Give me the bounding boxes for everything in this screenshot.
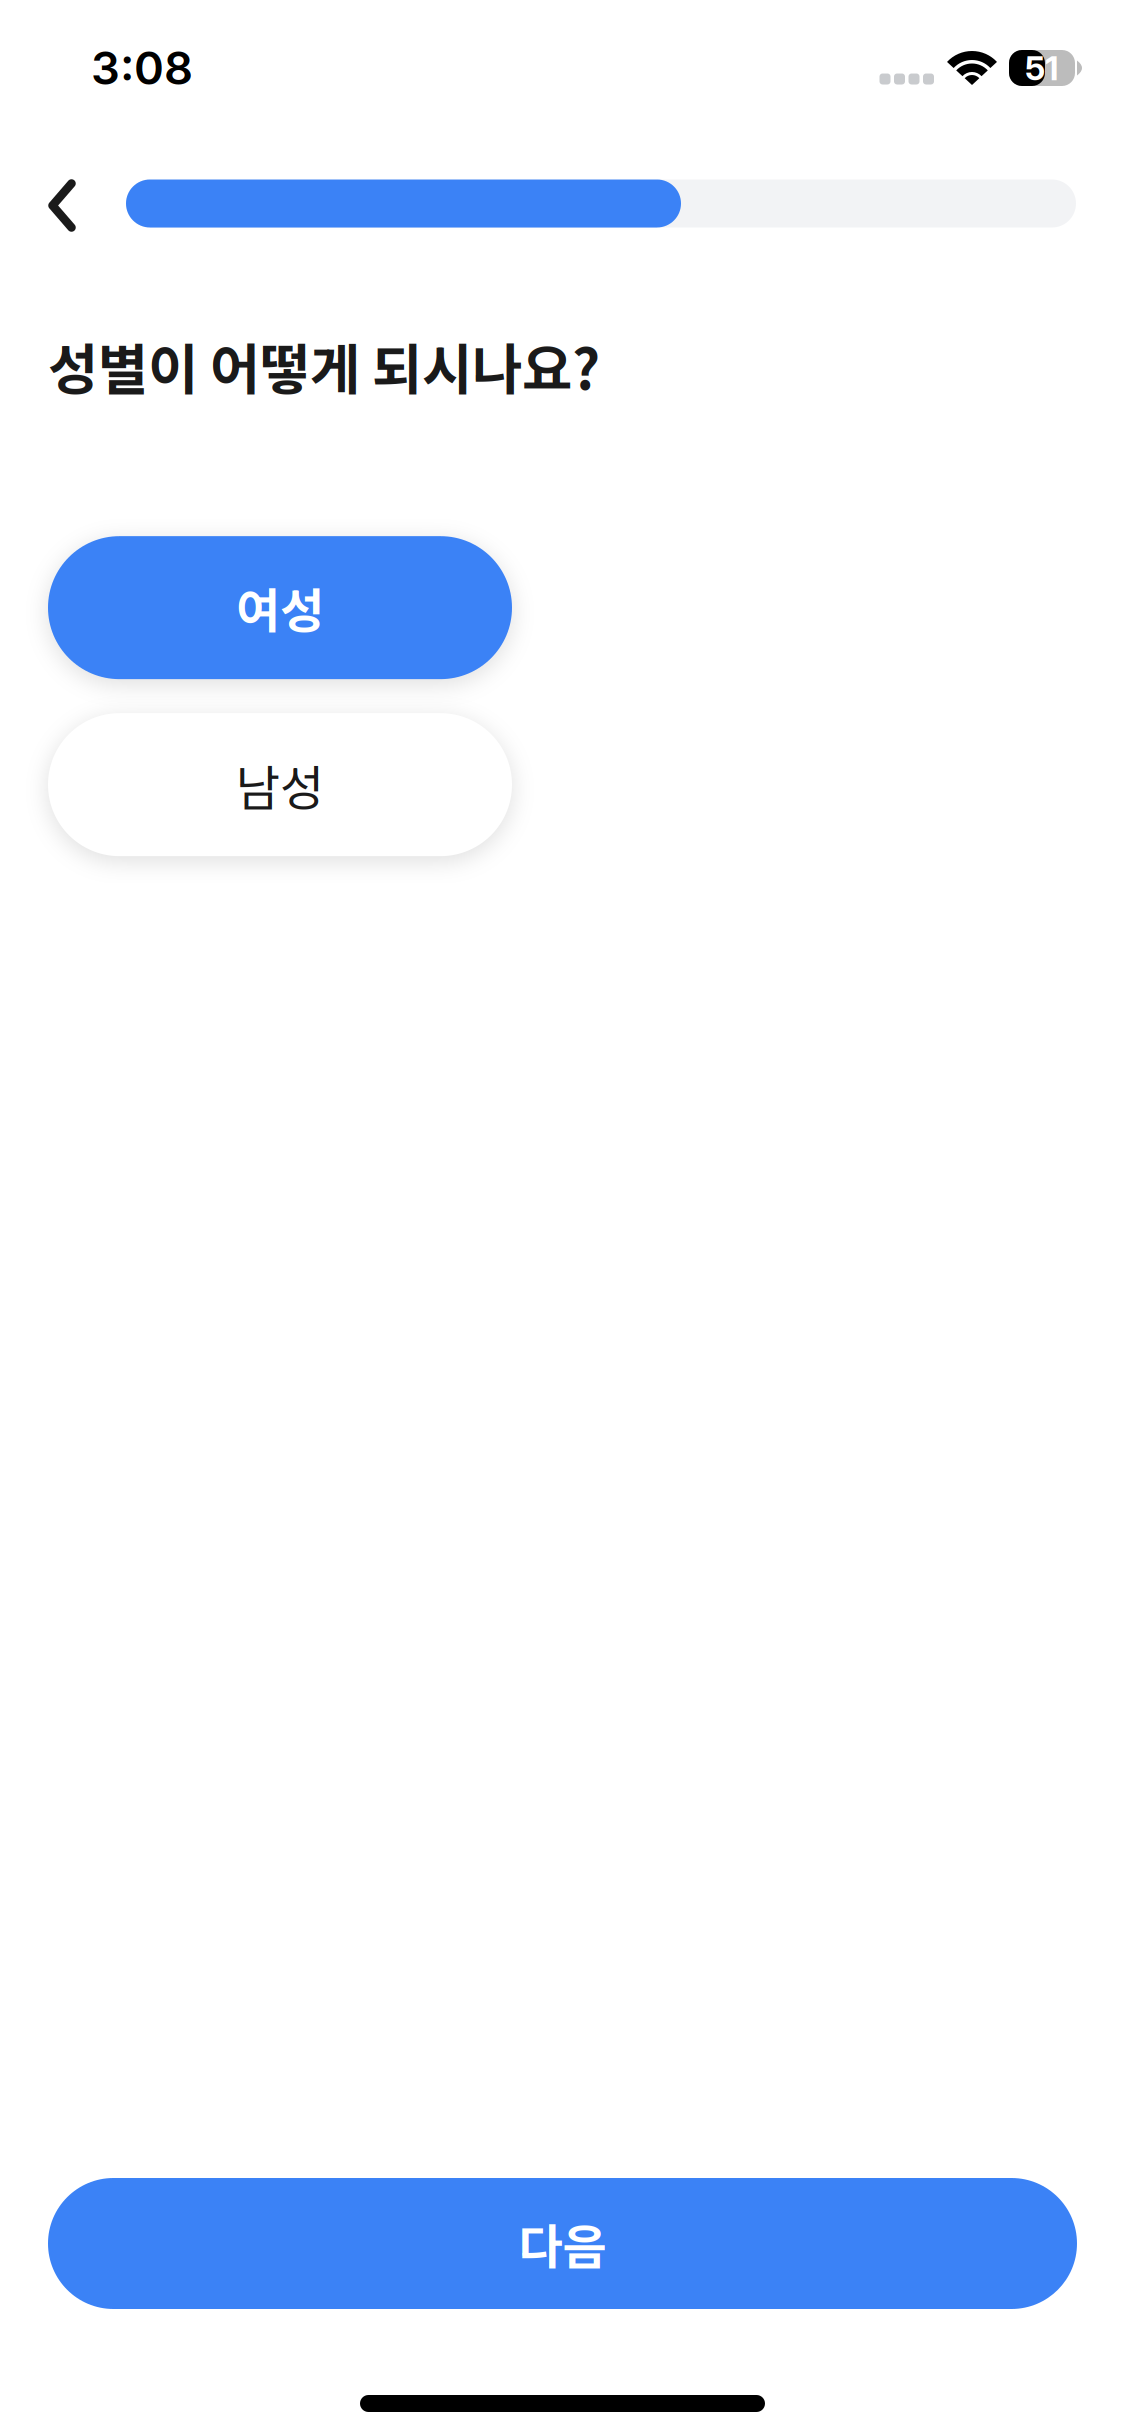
button[interactable]: 남성 xyxy=(48,713,512,856)
staticText: 성별이 어떻게 되시나요? xyxy=(48,326,600,405)
button[interactable]: 여성 xyxy=(48,536,512,679)
staticText: 여성 xyxy=(236,573,324,642)
staticText: 다음 xyxy=(518,2209,606,2278)
staticText: 남성 xyxy=(236,750,324,819)
button[interactable]: Back xyxy=(38,163,92,243)
staticText: 51 xyxy=(1025,48,1059,88)
staticText: 3:08 xyxy=(91,41,193,95)
button[interactable]: 다음 xyxy=(48,2178,1077,2309)
